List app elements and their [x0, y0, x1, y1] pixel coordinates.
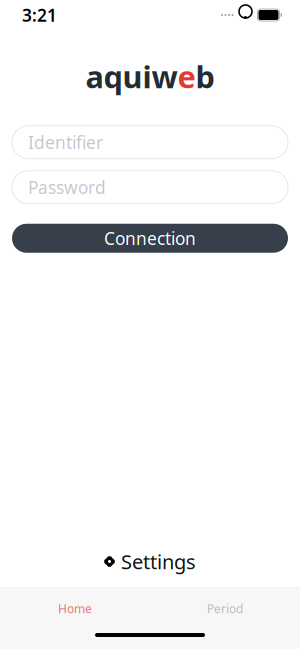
staticText: 3:21 — [22, 3, 57, 26]
staticText: b — [195, 56, 214, 97]
staticText: Home — [58, 600, 92, 616]
staticText: e — [177, 56, 195, 97]
button[interactable]: Connection — [12, 224, 288, 253]
staticText: aquiw — [85, 56, 177, 97]
staticText: Password — [28, 176, 106, 199]
button[interactable]: Settings — [0, 544, 300, 578]
staticText: Settings — [121, 548, 196, 575]
staticText: Period — [207, 600, 243, 616]
button[interactable]: Password — [12, 171, 288, 204]
button[interactable]: Home — [0, 588, 150, 629]
button[interactable]: Period — [150, 588, 300, 629]
staticText: Identifier — [28, 131, 103, 154]
button[interactable]: Identifier — [12, 126, 288, 159]
staticText: Connection — [104, 227, 196, 250]
